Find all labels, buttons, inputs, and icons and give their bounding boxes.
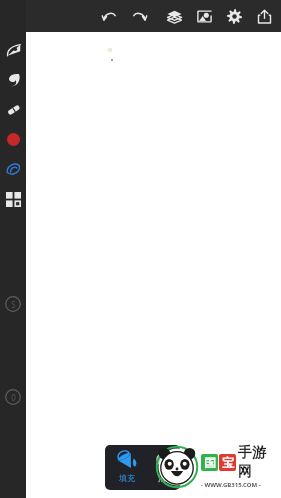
staticText: 清 bbox=[158, 473, 166, 483]
button[interactable]: Selection bbox=[3, 294, 23, 314]
button[interactable]: Undo bbox=[94, 1, 124, 31]
button[interactable]: Transform bbox=[3, 387, 23, 407]
staticText: 填充 bbox=[119, 473, 135, 483]
button[interactable]: Redo bbox=[124, 1, 154, 31]
button[interactable]: Settings bbox=[219, 1, 249, 31]
button[interactable]: Gallery bbox=[0, 184, 26, 214]
button[interactable]: 填充 bbox=[105, 445, 180, 490]
button[interactable]: Liquify bbox=[0, 154, 26, 184]
button[interactable]: Layers bbox=[159, 1, 189, 31]
button[interactable]: Eraser bbox=[0, 94, 26, 124]
button[interactable]: Smudge bbox=[0, 64, 26, 94]
staticText: - WWW.GB315.COM - bbox=[201, 481, 261, 489]
staticText: 手游网 bbox=[238, 444, 279, 480]
button[interactable]: Share bbox=[249, 1, 279, 31]
button[interactable]: Brush bbox=[0, 34, 26, 64]
staticText: 宝 bbox=[222, 455, 234, 470]
staticText: 国 bbox=[204, 455, 216, 470]
button[interactable]: Color bbox=[0, 124, 26, 154]
button[interactable]: Reference image bbox=[189, 1, 219, 31]
staticText: 0 bbox=[11, 392, 16, 403]
staticText: S bbox=[11, 299, 16, 310]
